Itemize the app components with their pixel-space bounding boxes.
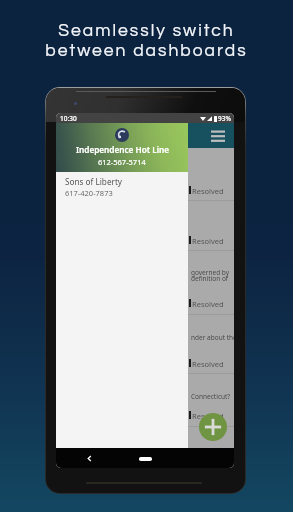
staticText: Resolved [192,359,224,369]
button[interactable]: Resolved [56,235,234,245]
staticText: Resolved [192,299,224,309]
staticText: Resolved [192,411,224,421]
staticText: nder about the [191,333,234,342]
staticText: Seamlessly switch [58,22,235,40]
button[interactable]: Resolved [56,410,234,420]
staticText: definition of [191,274,229,283]
staticText: 617-420-7873 [65,188,113,198]
button[interactable]: Home [139,457,152,461]
button[interactable]: Sons of Liberty [56,172,188,198]
button[interactable]: Resolved [56,298,234,308]
button[interactable]: Back [84,453,95,464]
button[interactable]: Resolved [56,358,234,368]
button[interactable]: Hot Line [56,123,234,148]
staticText: 93% [218,114,231,123]
staticText: between dashboards [45,42,248,60]
staticText: Hot Line [66,129,106,143]
staticText: Connecticut? [191,392,231,401]
staticText: Independence Hot Line [76,144,169,155]
staticText: Resolved [192,186,224,196]
button[interactable]: Add new item [199,413,227,441]
staticText: 612-567-5714 [98,157,146,167]
staticText: governed by [191,268,230,277]
staticText: Sons of Liberty [65,176,123,187]
button[interactable]: Open navigation menu [211,129,225,142]
staticText: Resolved [192,236,224,246]
staticText: 10:30 [60,114,77,123]
button[interactable]: Resolved [56,185,234,195]
